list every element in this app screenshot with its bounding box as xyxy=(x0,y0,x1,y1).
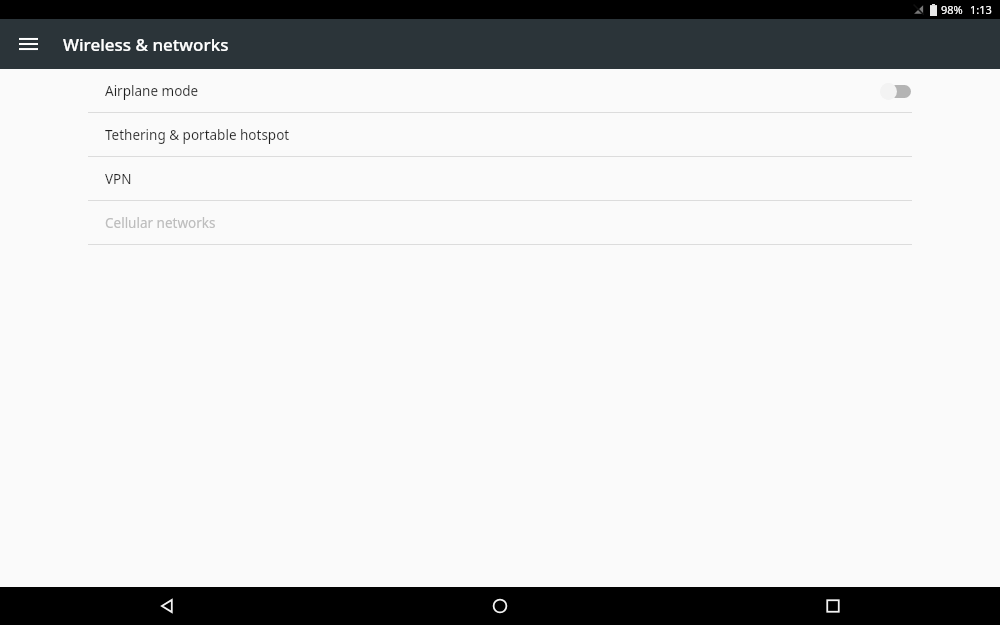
button[interactable]: Home xyxy=(478,587,522,625)
staticText: 1:13 xyxy=(970,2,992,17)
staticText: Airplane mode xyxy=(105,82,199,100)
staticText: VPN xyxy=(105,170,132,188)
button[interactable]: Cellular networks xyxy=(0,201,1000,244)
button[interactable]: Tethering & portable hotspot xyxy=(0,113,1000,156)
staticText: 98% xyxy=(941,2,963,17)
staticText: Cellular networks xyxy=(105,214,216,232)
staticText: Tethering & portable hotspot xyxy=(105,126,290,144)
staticText: Wireless & networks xyxy=(63,33,229,56)
button[interactable]: Airplane mode xyxy=(0,69,1000,112)
button[interactable]: Back xyxy=(145,587,189,625)
button[interactable]: Open navigation menu xyxy=(10,26,46,62)
button[interactable]: Airplane mode toggle xyxy=(880,81,912,101)
button[interactable]: VPN xyxy=(0,157,1000,200)
button[interactable]: Recent apps xyxy=(811,587,855,625)
